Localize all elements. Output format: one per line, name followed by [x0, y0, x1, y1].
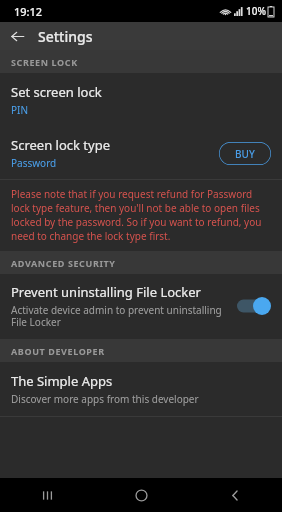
button[interactable]: Home: [118, 478, 164, 512]
staticText: Prevent uninstalling File Locker: [11, 283, 201, 301]
staticText: PIN: [11, 103, 29, 117]
staticText: Activate device admin to prevent uninsta…: [11, 303, 229, 329]
staticText: Settings: [38, 27, 93, 46]
button[interactable]: BUY: [219, 142, 271, 165]
staticText: The Simple Apps: [11, 372, 113, 390]
button[interactable]: Back: [212, 478, 258, 512]
button[interactable]: Recents: [24, 478, 70, 512]
staticText: ABOUT DEVELOPER: [11, 345, 105, 357]
staticText: BUY: [235, 147, 255, 161]
button[interactable]: Prevent uninstalling File Locker: [0, 274, 282, 339]
button[interactable]: The Simple Apps: [0, 362, 282, 416]
staticText: Please note that if you request refund f…: [11, 187, 273, 243]
button[interactable]: Set screen lock: [0, 73, 282, 127]
staticText: 19:12: [14, 4, 43, 19]
staticText: ADVANCED SECURITY: [11, 257, 116, 269]
staticText: 10%: [246, 4, 266, 18]
staticText: Screen lock type: [11, 136, 110, 154]
button[interactable]: Screen lock type: [0, 127, 282, 179]
staticText: Set screen lock: [11, 83, 102, 101]
staticText: Password: [11, 156, 57, 170]
staticText: Discover more apps from this developer: [11, 392, 199, 406]
button[interactable]: Prevent uninstalling toggle: [237, 297, 271, 315]
staticText: SCREEN LOCK: [11, 56, 78, 68]
button[interactable]: Back: [0, 22, 34, 50]
